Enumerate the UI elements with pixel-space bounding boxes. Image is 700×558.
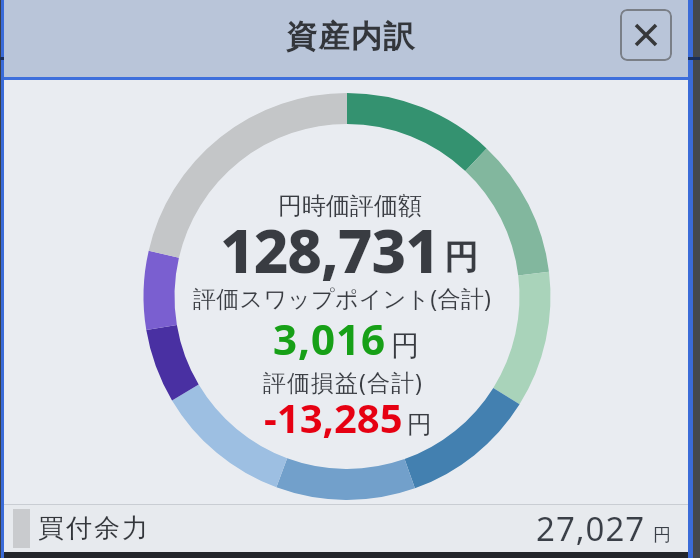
staticText: 3,016 [273,310,387,367]
staticText: 円 [407,409,432,440]
staticText: -13,285 [264,390,403,444]
staticText: 27,027 [536,506,646,551]
staticText: 円 [653,524,671,547]
button[interactable]: 買付余力 [0,505,700,552]
staticText: 円 [391,328,419,363]
staticText: 円時価評価額 [278,191,422,221]
button[interactable] [620,9,672,61]
staticText: 買付余力 [37,512,149,545]
staticText: 評価スワップポイント(合計) [193,282,492,313]
staticText: 128,731 [220,209,439,291]
staticText: 評価損益(合計) [263,366,423,397]
staticText: 円 [444,236,478,279]
staticText: 資産内訳 [285,17,415,56]
